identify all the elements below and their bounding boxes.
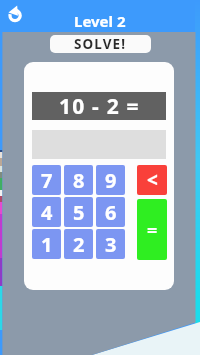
staticText: 6: [105, 199, 117, 226]
staticText: 9: [105, 167, 117, 194]
button[interactable]: 7: [32, 165, 61, 195]
button[interactable]: 6: [96, 197, 125, 227]
button[interactable]: 8: [64, 165, 93, 195]
staticText: 3: [105, 231, 117, 258]
button[interactable]: 9: [96, 165, 125, 195]
button[interactable]: 4: [32, 197, 61, 227]
button[interactable]: Equals: [137, 199, 167, 260]
staticText: 7: [41, 167, 53, 194]
staticText: 8: [73, 167, 85, 194]
staticText: 2: [73, 231, 85, 258]
staticText: 5: [73, 199, 85, 226]
button[interactable]: 3: [96, 229, 125, 259]
staticText: 1: [41, 231, 53, 258]
staticText: Level 2: [74, 11, 126, 31]
button[interactable]: 1: [32, 229, 61, 259]
button[interactable]: Undo: [7, 6, 22, 23]
staticText: =: [147, 218, 158, 243]
staticText: 10 - 2 =: [59, 92, 140, 120]
button[interactable]: 5: [64, 197, 93, 227]
button[interactable]: Backspace: [137, 165, 167, 195]
staticText: SOLVE!: [74, 35, 127, 53]
staticText: <: [147, 167, 158, 193]
button[interactable]: 2: [64, 229, 93, 259]
button[interactable]: SOLVE!: [50, 35, 151, 53]
staticText: 4: [41, 199, 53, 226]
